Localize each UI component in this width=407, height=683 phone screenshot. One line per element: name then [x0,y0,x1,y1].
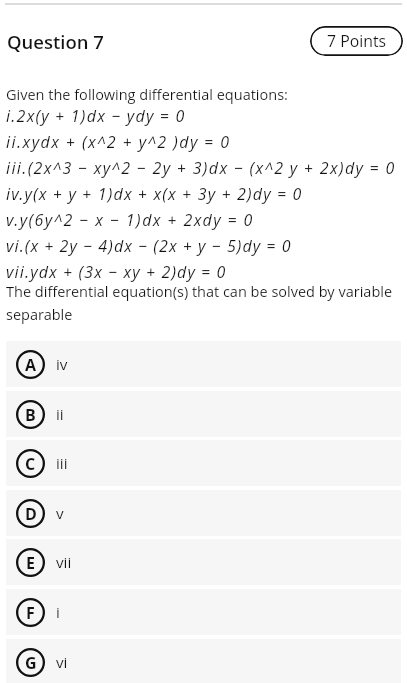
staticText: vi.(x + 2y − 4)dx − (2x + y − 5)dy = 0 [6,235,292,257]
staticText: ii [56,404,64,425]
staticText: Given the following differential equatio… [6,85,288,105]
button[interactable]: G [6,639,401,683]
button[interactable]: E [6,539,401,585]
button[interactable]: D [6,490,401,536]
button[interactable]: C [6,440,401,486]
staticText: vi [56,652,68,673]
staticText: vii [56,552,72,573]
staticText: ii.xydx + (x^2 + y^2 )dy = 0 [6,131,231,153]
staticText: 7 Points [327,30,386,52]
staticText: i.2x(y + 1)dx − ydy = 0 [6,105,186,127]
staticText: G [25,652,37,674]
staticText: F [26,602,35,624]
staticText: A [25,354,37,376]
staticText: iii.(2x^3 − xy^2 − 2y + 3)dx − (x^2 y + … [6,157,396,179]
button[interactable]: A [6,341,401,387]
button[interactable]: 7 Points [310,26,403,56]
staticText: vii.ydx + (3x − xy + 2)dy = 0 [6,261,227,283]
button[interactable]: F [6,589,401,635]
staticText: C [25,453,36,475]
staticText: iii [56,453,68,474]
staticText: separable [6,305,73,325]
staticText: iv [56,354,68,375]
staticText: B [25,404,36,426]
staticText: iv.y(x + y + 1)dx + x(x + 3y + 2)dy = 0 [6,183,303,205]
staticText: The differential equation(s) that can be… [6,282,393,302]
staticText: i [56,602,60,623]
staticText: Question 7 [7,29,104,54]
staticText: v [56,503,64,524]
staticText: v.y(6y^2 − x − 1)dx + 2xdy = 0 [6,209,254,231]
staticText: D [25,503,37,525]
staticText: E [26,552,35,574]
button[interactable]: B [6,391,401,437]
